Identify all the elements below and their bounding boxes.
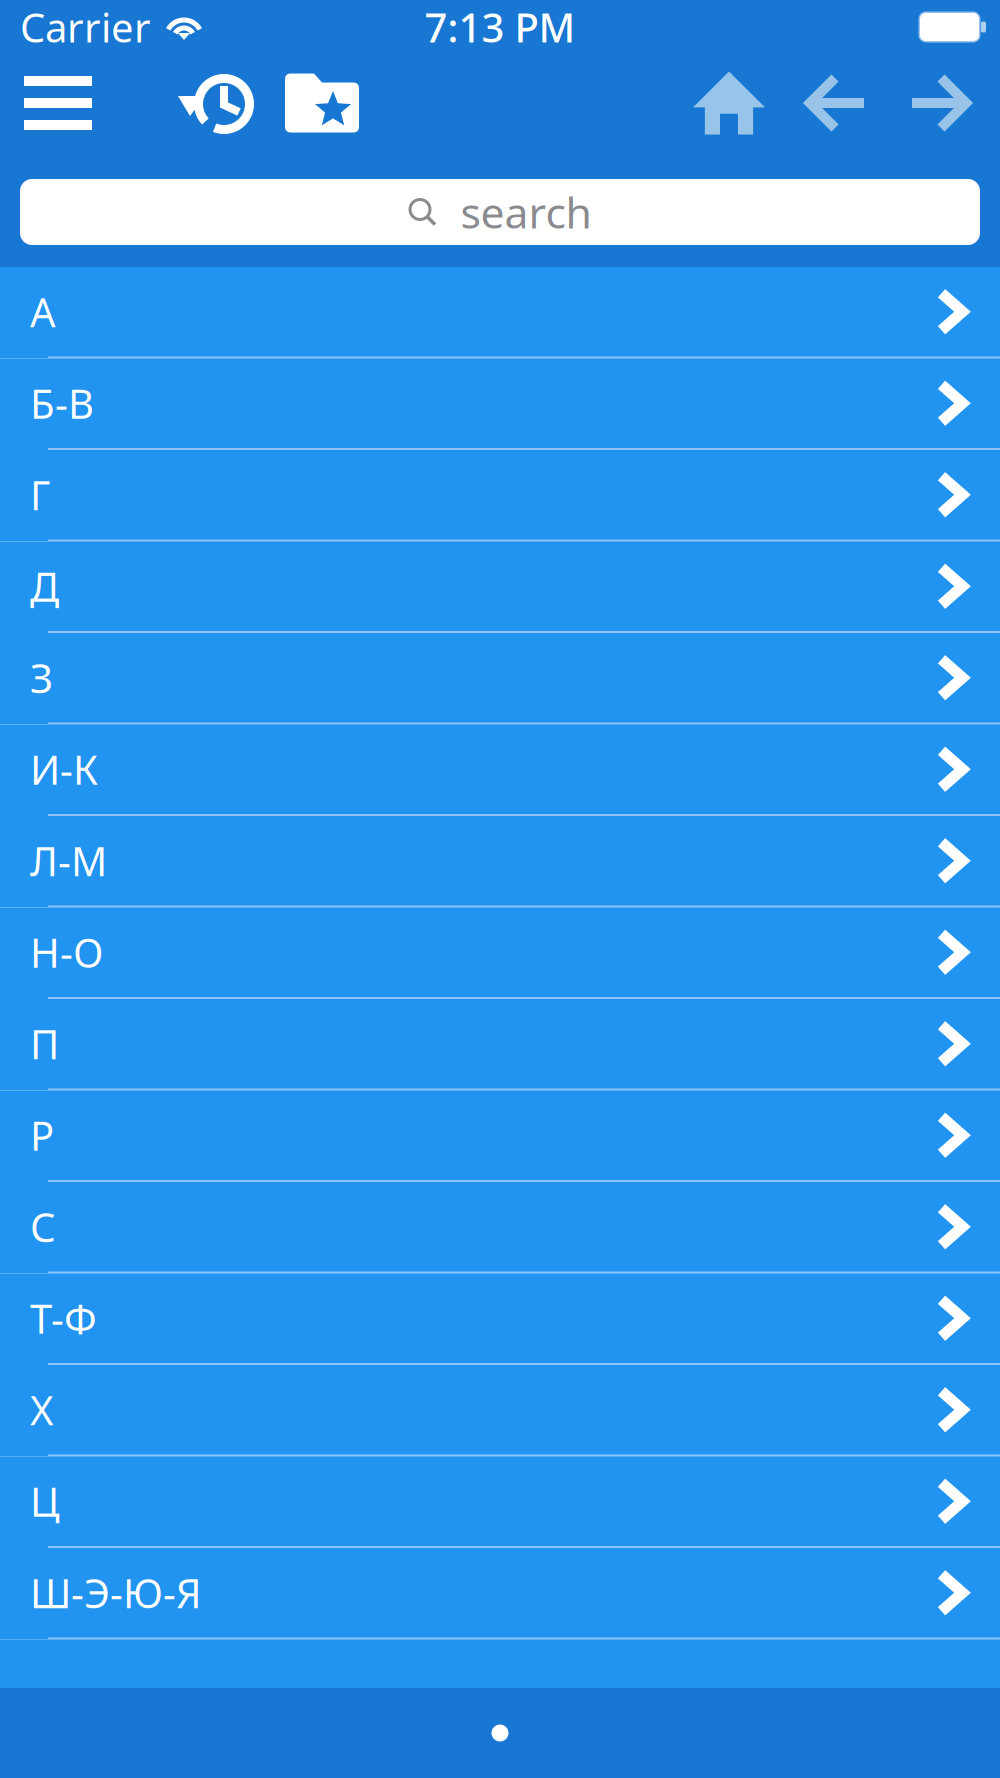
button[interactable]: П [0,999,1000,1090]
staticText: С [30,1200,56,1253]
button[interactable]: Х [0,1365,1000,1456]
button[interactable]: Ц [0,1456,1000,1548]
staticText: search [460,184,591,240]
button[interactable]: З [0,633,1000,724]
button[interactable]: Ш-Э-Ю-Я [0,1548,1000,1639]
button[interactable]: Home [693,71,765,134]
staticText: 7:13 PM [424,0,575,53]
staticText: Б-В [30,377,94,430]
button[interactable]: С [0,1182,1000,1273]
staticText: П [30,1017,59,1070]
button[interactable]: Menu [24,76,92,130]
staticText: Д [30,560,59,613]
button[interactable]: И-К [0,724,1000,816]
button[interactable]: Н-О [0,907,1000,999]
button[interactable]: Т-Ф [0,1273,1000,1365]
staticText: Х [30,1383,54,1436]
button[interactable]: А [0,267,1000,358]
button[interactable]: search [20,179,980,245]
staticText: Г [30,468,50,521]
staticText: Т-Ф [30,1292,97,1345]
staticText: Ш-Э-Ю-Я [30,1566,202,1619]
button[interactable]: Favorites [285,73,359,132]
staticText: Carrier [20,0,151,53]
staticText: Р [30,1109,54,1162]
button[interactable]: Л-М [0,816,1000,907]
staticText: Ц [30,1475,60,1528]
button[interactable]: History [181,69,251,137]
button[interactable]: Forward [911,73,970,133]
staticText: А [30,285,56,338]
button[interactable]: Back [806,73,865,133]
button[interactable]: Г [0,450,1000,541]
staticText: Н-О [30,926,103,979]
button[interactable]: Д [0,541,1000,633]
button[interactable]: Б-В [0,358,1000,450]
staticText: И-К [30,743,98,796]
staticText: Л-М [30,834,107,887]
staticText: З [30,651,53,704]
button[interactable]: Р [0,1090,1000,1182]
